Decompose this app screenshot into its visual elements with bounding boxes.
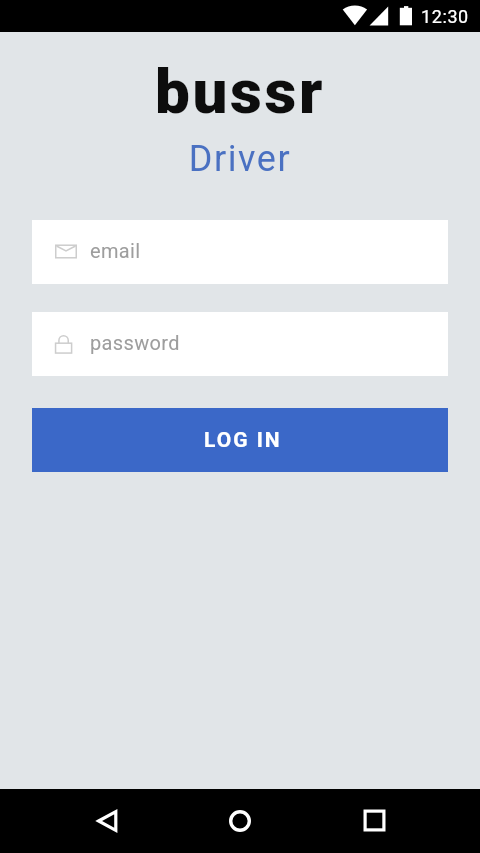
staticText: Driver [0, 138, 480, 180]
staticText: email [90, 239, 141, 262]
button[interactable]: Recent apps [338, 789, 412, 853]
button[interactable]: email [32, 220, 448, 284]
button[interactable]: Back [70, 789, 144, 853]
button[interactable]: password [32, 312, 448, 376]
staticText: 12:30 [421, 6, 469, 27]
staticText: bussr [0, 55, 480, 128]
staticText: LOG IN [204, 428, 282, 453]
button[interactable]: Home [203, 789, 277, 853]
staticText: password [90, 331, 180, 354]
button[interactable]: LOG IN [32, 408, 448, 472]
